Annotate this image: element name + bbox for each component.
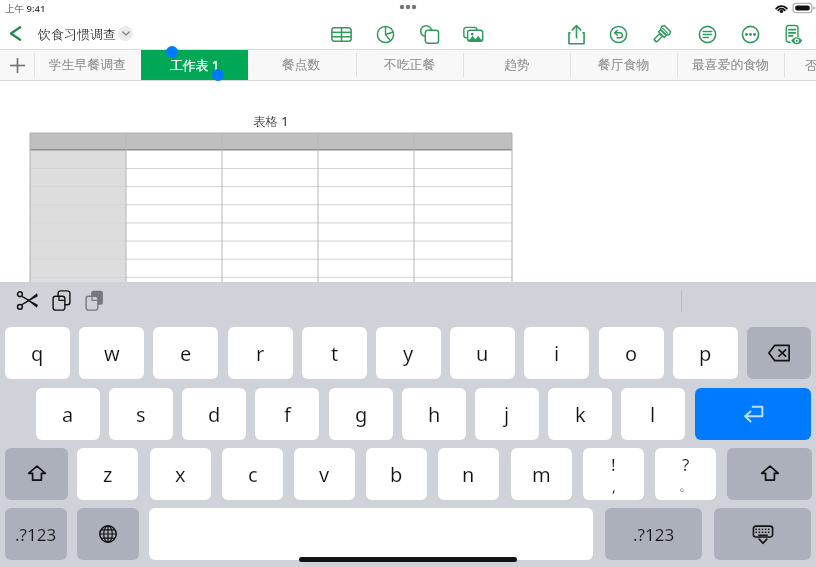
button[interactable]: 学生早餐调查 [34,50,141,81]
staticText: t [331,340,339,367]
button[interactable]: r [228,327,293,379]
staticText: ! [611,453,616,476]
button[interactable]: i [524,327,589,379]
button[interactable]: y [376,327,441,379]
button[interactable]: c [222,448,283,500]
button[interactable]: g [329,388,393,440]
staticText: m [532,461,551,488]
button[interactable]: w [79,327,144,379]
staticText: l [650,401,656,428]
button[interactable]: l [621,388,685,440]
button[interactable]: u [450,327,515,379]
staticText: 学生早餐调查 [49,57,126,73]
button[interactable]: Insert media [458,21,488,47]
staticText: v [319,461,330,488]
button[interactable]: Paste [79,285,109,315]
button[interactable]: Hide keyboard [714,508,811,560]
staticText: f [284,401,291,428]
button[interactable]: s [109,388,173,440]
staticText: p [699,340,712,367]
staticText: 工作表 1 [170,56,220,73]
staticText: o [625,340,638,367]
button[interactable]: o [599,327,664,379]
button[interactable]: Undo [603,21,633,47]
staticText: 。 [679,477,693,495]
button[interactable]: Cut [12,285,42,315]
staticText: 不吃正餐 [384,57,436,73]
button[interactable]: z [77,448,138,500]
button[interactable]: Document setup [777,21,807,47]
staticText: r [256,340,265,367]
button[interactable]: j [475,388,539,440]
button[interactable]: d [182,388,246,440]
button[interactable]: Shift [5,448,68,500]
button[interactable]: Add sheet [0,49,34,81]
button[interactable]: t [302,327,367,379]
button[interactable]: Document options [118,26,133,41]
button[interactable]: More options [735,21,765,47]
button[interactable]: 餐点数 [248,50,355,81]
button[interactable]: Space [149,508,593,560]
button[interactable]: Insert table [326,21,356,47]
button[interactable]: p [673,327,738,379]
button[interactable]: k [548,388,612,440]
staticText: 趋势 [504,57,530,73]
button[interactable]: Format [692,21,722,47]
staticText: g [355,401,368,428]
button[interactable]: h [402,388,466,440]
button[interactable]: Shift [727,448,812,500]
button[interactable]: 趋势 [463,50,570,81]
staticText: , [612,477,616,496]
staticText: ? [682,453,690,476]
button[interactable]: q [5,327,70,379]
button[interactable]: Back [0,18,30,49]
staticText: h [428,401,441,428]
staticText: c [248,461,258,488]
staticText: .?123 [15,523,57,546]
staticText: w [104,340,120,367]
staticText: z [103,461,113,488]
staticText: 最喜爱的食物 [692,57,769,73]
button[interactable]: n [438,448,499,500]
button[interactable]: e [153,327,218,379]
staticText: e [180,340,192,367]
staticText: d [208,401,221,428]
button[interactable]: Format brush [646,21,676,47]
button[interactable]: Backspace [747,327,811,379]
button[interactable]: 最喜爱的食物 [677,50,784,81]
staticText: 饮食习惯调查 [38,26,116,42]
button[interactable]: v [294,448,355,500]
button[interactable]: 不吃正餐 [356,50,463,81]
button[interactable]: Insert chart [370,21,400,47]
button[interactable]: Copy [46,285,76,315]
button[interactable]: x [150,448,211,500]
button[interactable]: ! [583,448,644,500]
button[interactable]: 否 [784,50,816,81]
staticText: a [62,401,74,428]
staticText: x [175,461,186,488]
staticText: u [476,340,489,367]
staticText: 否 [805,58,816,74]
staticText: 表格 1 [253,113,289,130]
button[interactable]: Share [561,21,591,47]
staticText: j [504,401,510,428]
button[interactable]: b [366,448,427,500]
button[interactable]: m [511,448,572,500]
button[interactable]: .?123 [605,508,702,560]
button[interactable]: Insert shape [414,21,444,47]
button[interactable]: 饮食习惯调查 [36,18,118,49]
button[interactable]: 餐厅食物 [570,50,677,81]
button[interactable]: Next keyboard [77,508,139,560]
staticText: n [462,461,475,488]
staticText: y [403,340,414,367]
button[interactable]: Return [695,388,811,440]
staticText: 餐厅食物 [598,57,650,73]
button[interactable]: f [255,388,319,440]
button[interactable]: 工作表 1 [141,50,248,81]
button[interactable]: .?123 [5,508,67,560]
staticText: k [575,401,586,428]
button[interactable]: ? [655,448,716,500]
staticText: .?123 [633,523,675,546]
staticText: s [136,401,146,428]
button[interactable]: a [36,388,100,440]
